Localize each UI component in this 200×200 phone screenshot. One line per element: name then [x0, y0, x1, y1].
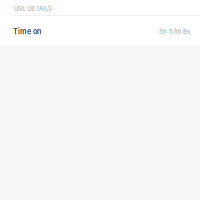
staticText: 5h 57m 8s — [159, 28, 190, 35]
staticText: Time on — [13, 27, 41, 36]
button[interactable]: Time on — [0, 16, 200, 45]
staticText: USE DETAILS — [14, 5, 52, 12]
